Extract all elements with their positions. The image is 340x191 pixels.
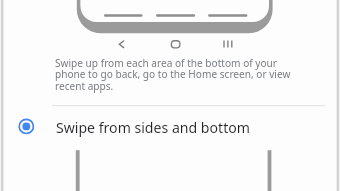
staticText: Swipe from sides and bottom <box>56 118 250 137</box>
staticText: Swipe up from each area of the bottom of… <box>55 56 295 93</box>
button[interactable]: Swipe from sides and bottom <box>0 107 340 146</box>
